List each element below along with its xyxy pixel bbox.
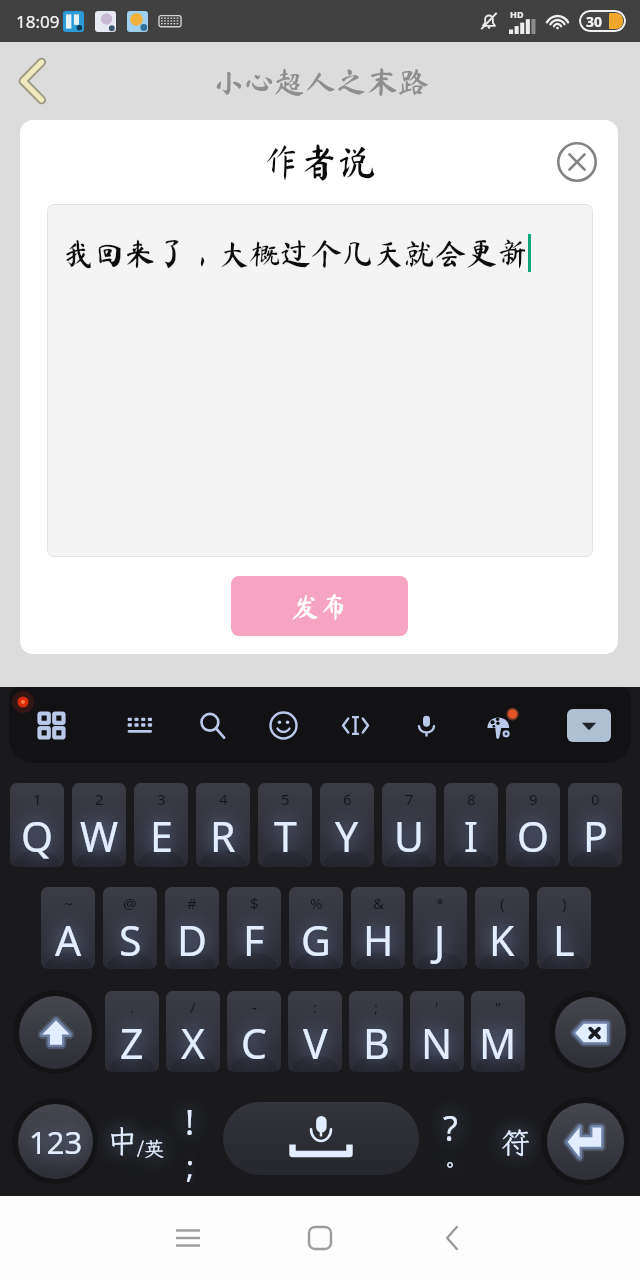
staticText: - (252, 997, 257, 1017)
button[interactable]: ~ (41, 887, 95, 969)
staticText: V (303, 1015, 328, 1071)
staticText: Y (335, 808, 359, 864)
button[interactable]: 发布 (231, 576, 408, 636)
staticText: $ (250, 893, 259, 913)
staticText: D (177, 912, 207, 968)
button[interactable]: 7 (382, 783, 436, 867)
staticText: /英 (137, 1135, 164, 1161)
staticText: 符 (501, 1123, 531, 1161)
button[interactable]: " (471, 991, 525, 1072)
button[interactable]: & (351, 887, 405, 969)
button[interactable]: Space (223, 1102, 419, 1175)
staticText: 3 (157, 789, 166, 809)
staticText: 8 (467, 789, 476, 809)
button[interactable]: Text cursor (328, 698, 382, 752)
button[interactable]: ? (428, 1099, 472, 1183)
button[interactable]: % (289, 887, 343, 969)
staticText: ' (435, 997, 439, 1017)
staticText: 4 (219, 789, 228, 809)
staticText: J (434, 912, 446, 968)
button[interactable]: 0 (568, 783, 622, 867)
staticText: ~ (64, 893, 73, 913)
button[interactable]: 9 (506, 783, 560, 867)
staticText: G (301, 912, 331, 968)
button[interactable]: Enter (541, 1097, 629, 1185)
staticText: HD (510, 8, 524, 20)
staticText: I (464, 808, 478, 864)
button[interactable]: Keyboard layout (113, 698, 167, 752)
staticText: . (130, 997, 135, 1017)
staticText: X (181, 1015, 206, 1071)
button[interactable]: 2 (72, 783, 126, 867)
staticText: & (373, 893, 384, 913)
staticText: Q (21, 808, 54, 864)
staticText: @ (123, 893, 137, 913)
button[interactable]: Search (185, 698, 239, 752)
button[interactable]: @ (103, 887, 157, 969)
staticText: K (489, 912, 515, 968)
button[interactable]: Emoji (256, 698, 310, 752)
staticText: H (363, 912, 394, 968)
button[interactable]: ; (349, 991, 403, 1072)
staticText: ( (500, 893, 505, 913)
button[interactable]: ! (168, 1099, 212, 1183)
button[interactable]: / (166, 991, 220, 1072)
button[interactable]: 8 (444, 783, 498, 867)
staticText: % (310, 893, 323, 913)
button[interactable]: Back (422, 1208, 482, 1268)
staticText: L (553, 912, 575, 968)
staticText: W (80, 808, 119, 864)
staticText: * (436, 893, 445, 913)
button[interactable]: Themes (473, 698, 527, 752)
staticText: Z (120, 1015, 144, 1071)
button[interactable]: Apps (24, 698, 78, 752)
button[interactable]: Shift (13, 990, 97, 1074)
staticText: 中 (107, 1121, 137, 1161)
button[interactable]: Close (551, 136, 603, 188)
staticText: " (495, 997, 502, 1017)
button[interactable]: Recents (158, 1208, 218, 1268)
button[interactable]: 6 (320, 783, 374, 867)
button[interactable]: Backspace (549, 991, 631, 1073)
button[interactable]: 中 (100, 1112, 170, 1170)
staticText: E (150, 808, 173, 864)
button[interactable]: 符 (491, 1114, 541, 1170)
staticText: 5 (281, 789, 290, 809)
staticText: ; (374, 997, 379, 1017)
button[interactable]: Home (290, 1208, 350, 1268)
button[interactable]: # (165, 887, 219, 969)
button[interactable]: . (105, 991, 159, 1072)
button[interactable]: Numbers (12, 1098, 98, 1184)
button[interactable]: $ (227, 887, 281, 969)
staticText: 1 (33, 789, 42, 809)
staticText: O (517, 808, 550, 864)
staticText: # (187, 893, 197, 913)
staticText: 18:09 (16, 10, 60, 33)
staticText: 9 (529, 789, 538, 809)
staticText: A (55, 912, 82, 968)
button[interactable]: Hide keyboard (562, 698, 616, 752)
staticText: / (190, 997, 196, 1017)
button[interactable]: ( (475, 887, 529, 969)
button[interactable]: - (227, 991, 281, 1072)
staticText: : (313, 997, 318, 1017)
staticText: 7 (405, 789, 414, 809)
staticText: 我回来了，大概过个几天就会更新 (63, 238, 528, 269)
staticText: C (241, 1015, 267, 1071)
staticText: M (479, 1015, 517, 1071)
button[interactable]: 4 (196, 783, 250, 867)
button[interactable]: ' (410, 991, 464, 1072)
button[interactable]: Back (1, 50, 63, 112)
button[interactable]: 3 (134, 783, 188, 867)
staticText: S (119, 912, 142, 968)
staticText: U (394, 808, 424, 864)
button[interactable]: * (413, 887, 467, 969)
staticText: 发布 (291, 592, 348, 620)
button[interactable]: 5 (258, 783, 312, 867)
button[interactable]: 1 (10, 783, 64, 867)
staticText: 123 (29, 1121, 83, 1163)
staticText: 2 (95, 789, 104, 809)
button[interactable]: ) (537, 887, 591, 969)
button[interactable]: Voice input (399, 698, 453, 752)
button[interactable]: : (288, 991, 342, 1072)
